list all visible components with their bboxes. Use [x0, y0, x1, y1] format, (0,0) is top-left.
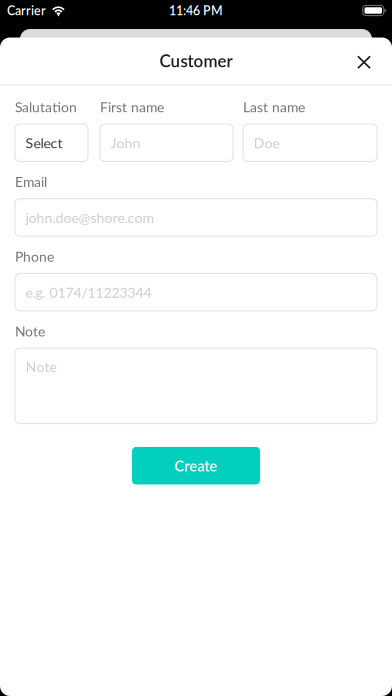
staticText: john.doe@shore.com [26, 209, 155, 226]
staticText: Phone [15, 248, 54, 265]
staticText: Doe [254, 134, 280, 151]
button[interactable]: Close [343, 39, 385, 83]
staticText: Select [26, 134, 63, 151]
staticText: e.g. 0174/11223344 [26, 284, 152, 301]
staticText: 11:46 PM [169, 3, 223, 18]
button[interactable]: Create [132, 447, 260, 484]
staticText: Salutation [15, 98, 77, 115]
staticText: First name [100, 98, 164, 115]
staticText: Email [15, 173, 47, 190]
staticText: John [111, 134, 141, 151]
staticText: Note [26, 358, 57, 375]
staticText: Last name [243, 98, 305, 115]
staticText: Create [174, 457, 217, 474]
staticText: Carrier [7, 3, 46, 18]
staticText: Customer [159, 51, 232, 71]
staticText: Note [15, 323, 45, 339]
